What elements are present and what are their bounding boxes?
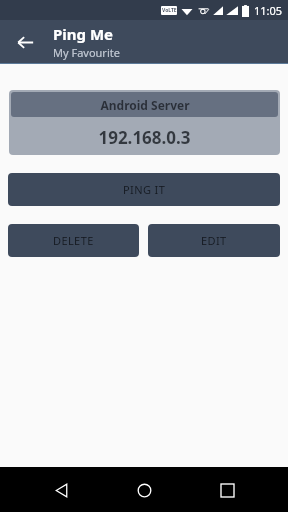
staticText: VoLTE (162, 7, 177, 14)
staticText: 192.168.0.3 (98, 126, 191, 149)
button[interactable]: PING IT (8, 173, 280, 206)
button[interactable]: Recent apps (205, 468, 249, 512)
staticText: EDIT (201, 233, 227, 248)
staticText: 11:05 (254, 3, 283, 18)
button[interactable]: Back (39, 468, 83, 512)
button[interactable]: DELETE (8, 224, 139, 257)
staticText: PING IT (123, 182, 166, 197)
staticText: My Favourite (53, 45, 120, 60)
button[interactable]: EDIT (148, 224, 280, 257)
staticText: Android Server (100, 97, 190, 113)
staticText: Ping Me (53, 24, 114, 44)
button[interactable]: Home (122, 468, 166, 512)
staticText: DELETE (53, 233, 94, 248)
button[interactable]: Back (8, 25, 42, 59)
button[interactable]: Android Server (9, 90, 280, 155)
